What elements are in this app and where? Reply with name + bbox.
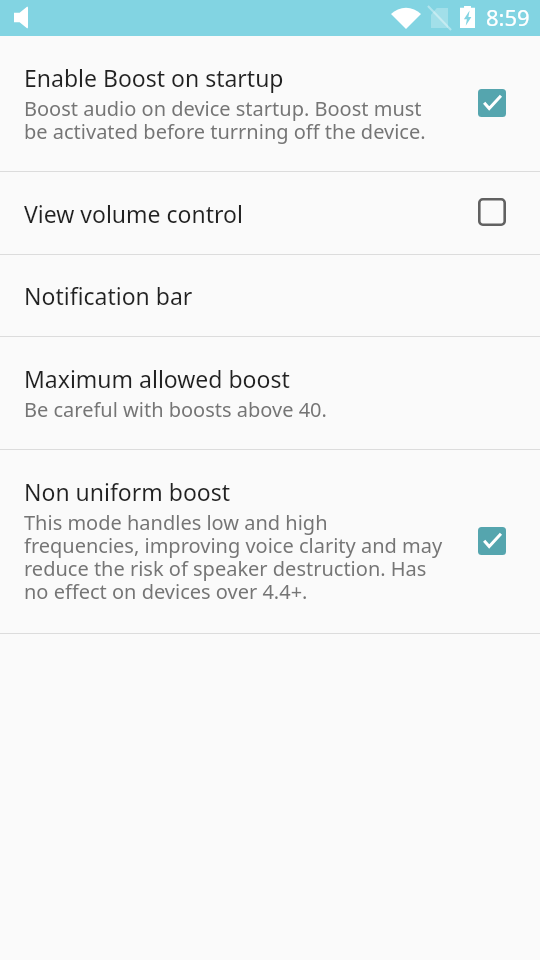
staticText: Boost audio on device startup. Boost mus… [24, 95, 445, 145]
button[interactable]: Disabled, toggle setting [478, 198, 506, 226]
button[interactable]: Notification bar [0, 255, 540, 336]
staticText: Non uniform boost [24, 476, 231, 507]
staticText: Maximum allowed boost [24, 363, 290, 394]
staticText: Enable Boost on startup [24, 62, 284, 93]
staticText: 8:59 [486, 2, 530, 32]
other: Volume muted [14, 6, 28, 29]
button[interactable]: Non uniform boost [0, 450, 540, 633]
staticText: View volume control [24, 198, 243, 229]
staticText: This mode handles low and high frequenci… [24, 509, 445, 605]
button[interactable]: View volume control [0, 172, 540, 254]
staticText: Be careful with boosts above 40. [24, 396, 327, 423]
button[interactable]: Enabled, toggle setting [478, 527, 506, 555]
button[interactable]: Enabled, toggle setting [478, 89, 506, 117]
staticText: Notification bar [24, 280, 193, 311]
button[interactable]: Enable Boost on startup [0, 36, 540, 171]
button[interactable]: Maximum allowed boost [0, 337, 540, 449]
